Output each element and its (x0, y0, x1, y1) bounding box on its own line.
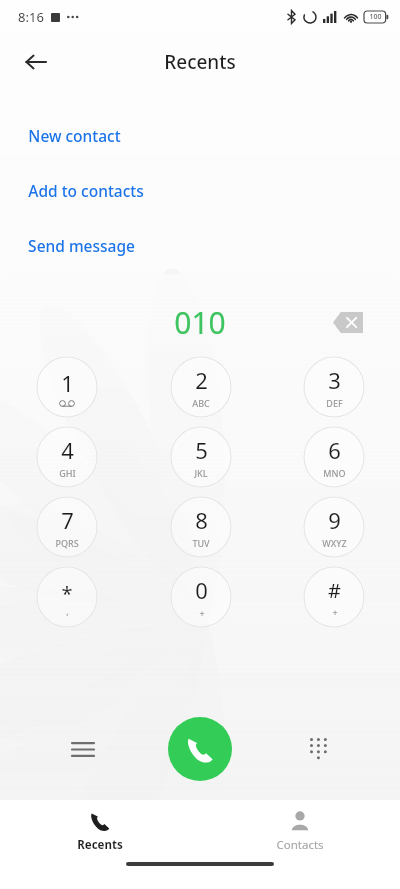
staticText: 9 (328, 505, 341, 535)
button[interactable]: Add to contacts (0, 163, 400, 218)
button[interactable]: 1 (36, 356, 98, 418)
staticText: + (332, 606, 338, 618)
staticText: 7 (61, 505, 74, 535)
staticText: Contacts (276, 837, 324, 853)
staticText: 4 (61, 435, 74, 465)
button[interactable]: Keypad (296, 726, 342, 772)
staticText: # (328, 577, 341, 604)
staticText: , (66, 605, 69, 617)
staticText: 2 (195, 365, 208, 395)
button[interactable]: 5 (170, 426, 232, 488)
button[interactable]: Back (12, 38, 60, 86)
button[interactable]: More options (60, 726, 106, 772)
staticText: 8 (195, 505, 208, 535)
button[interactable]: New contact (0, 108, 400, 163)
staticText: GHI (59, 467, 76, 479)
staticText: * (61, 580, 73, 607)
button[interactable]: # (303, 566, 365, 628)
staticText: 8:16 (18, 8, 44, 26)
staticText: WXYZ (322, 537, 347, 549)
button[interactable]: Contacts (200, 800, 400, 862)
button[interactable]: 9 (303, 496, 365, 558)
staticText: Recents (77, 837, 123, 853)
staticText: Send message (28, 235, 135, 256)
staticText: DEF (326, 397, 343, 409)
staticText: PQRS (55, 537, 79, 549)
staticText: Recents (164, 49, 236, 75)
staticText: MNO (323, 467, 346, 479)
button[interactable]: 0 (170, 566, 232, 628)
button[interactable]: Recents (0, 800, 200, 862)
button[interactable]: 8 (170, 496, 232, 558)
button[interactable]: 3 (303, 356, 365, 418)
staticText: 1 (61, 368, 74, 398)
staticText: 3 (328, 365, 341, 395)
button[interactable]: 6 (303, 426, 365, 488)
staticText: Add to contacts (28, 180, 144, 201)
button[interactable]: 4 (36, 426, 98, 488)
staticText: JKL (194, 467, 208, 479)
button[interactable]: Call (168, 717, 232, 781)
staticText: TUV (192, 537, 210, 549)
button[interactable]: Delete (326, 300, 370, 344)
staticText: 0 (195, 575, 208, 605)
staticText: ABC (192, 397, 210, 409)
button[interactable]: 7 (36, 496, 98, 558)
staticText: + (199, 607, 205, 619)
staticText: 6 (328, 435, 341, 465)
staticText: 010 (174, 302, 226, 343)
button[interactable]: * (36, 566, 98, 628)
button[interactable]: 2 (170, 356, 232, 418)
button[interactable]: Send message (0, 218, 400, 273)
staticText: 5 (195, 435, 208, 465)
staticText: 100 (369, 12, 382, 22)
staticText: New contact (28, 125, 121, 146)
